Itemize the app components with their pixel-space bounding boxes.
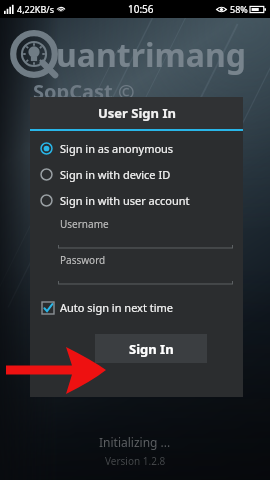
staticText: Sign in with user account	[60, 193, 190, 208]
button[interactable]: Auto sign in next time	[40, 298, 176, 317]
staticText: Sign In	[129, 340, 174, 358]
staticText: Auto sign in next time	[60, 300, 174, 315]
staticText: Initializing ...	[99, 434, 171, 450]
staticText: uantrimang	[56, 33, 246, 77]
staticText: 58%	[230, 3, 248, 15]
staticText: Sign in with device ID	[60, 167, 171, 182]
staticText: 4,22KB/s	[17, 3, 54, 15]
staticText: Username	[60, 217, 109, 231]
button[interactable]: Sign In	[95, 334, 207, 363]
staticText: User Sign In	[98, 104, 176, 122]
button[interactable]: Sign in with user account	[30, 193, 243, 208]
button[interactable]: Sign in with device ID	[30, 167, 243, 182]
staticText: Password	[60, 253, 106, 267]
staticText: Sign in as anonymous	[60, 141, 174, 156]
button[interactable]: Sign in as anonymous	[30, 141, 243, 156]
staticText: Version 1.2.8	[105, 454, 166, 468]
staticText: SopCast ©	[33, 78, 135, 105]
staticText: 10:56	[128, 2, 154, 16]
